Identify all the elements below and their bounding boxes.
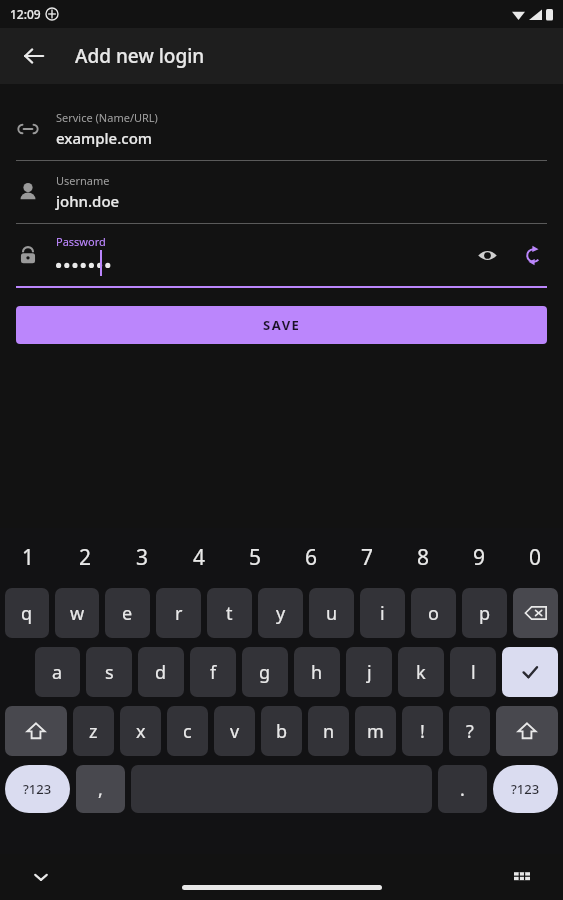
button[interactable]: ?123 <box>493 765 558 813</box>
button[interactable]: u <box>309 588 354 638</box>
button[interactable]: j <box>346 647 392 697</box>
staticText: l <box>471 660 476 685</box>
staticText: Service (Name/URL) <box>56 110 158 125</box>
button[interactable]: v <box>214 706 255 756</box>
button[interactable]: i <box>360 588 405 638</box>
button[interactable]: Backspace <box>513 588 558 638</box>
button[interactable]: 1 <box>0 536 57 578</box>
button[interactable]: 6 <box>283 536 339 578</box>
staticText: i <box>380 601 385 626</box>
button[interactable]: o <box>411 588 456 638</box>
button[interactable]: 9 <box>451 536 507 578</box>
button[interactable]: Switch keyboard <box>507 862 537 892</box>
staticText: 5 <box>249 543 262 572</box>
button[interactable]: q <box>5 588 49 638</box>
button[interactable]: Shift <box>5 706 67 756</box>
button[interactable]: ? <box>449 706 490 756</box>
staticText: Password <box>56 234 106 249</box>
staticText: Add new login <box>75 43 205 69</box>
staticText: 4 <box>193 543 206 572</box>
button[interactable]: ! <box>402 706 443 756</box>
staticText: u <box>326 601 338 626</box>
button[interactable]: r <box>156 588 201 638</box>
staticText: f <box>210 660 217 685</box>
button[interactable]: n <box>308 706 349 756</box>
staticText: 7 <box>361 543 374 572</box>
button[interactable]: Enter <box>502 647 558 697</box>
staticText: a <box>52 660 63 685</box>
staticText: 1 <box>22 543 35 572</box>
button[interactable]: k <box>398 647 444 697</box>
staticText: j <box>367 660 372 685</box>
staticText: o <box>428 601 439 626</box>
staticText: Username <box>56 173 110 188</box>
staticText: t <box>226 601 233 626</box>
button[interactable]: h <box>294 647 340 697</box>
staticText: 12:09 <box>10 6 41 22</box>
button[interactable]: w <box>55 588 99 638</box>
button[interactable]: Username <box>0 161 563 224</box>
button[interactable]: d <box>138 647 184 697</box>
staticText: 3 <box>136 543 149 572</box>
button[interactable]: , <box>76 765 125 813</box>
staticText: . <box>460 777 465 802</box>
button[interactable]: 2 <box>57 536 114 578</box>
staticText: q <box>21 601 33 626</box>
button[interactable]: Generate password <box>511 233 555 277</box>
button[interactable]: l <box>450 647 496 697</box>
button[interactable]: z <box>73 706 114 756</box>
button[interactable]: 4 <box>171 536 227 578</box>
staticText: 9 <box>473 543 486 572</box>
button[interactable]: t <box>207 588 252 638</box>
staticText: ?123 <box>23 780 52 798</box>
button[interactable]: m <box>355 706 396 756</box>
button[interactable]: Back <box>12 34 56 78</box>
staticText: v <box>230 719 240 744</box>
button[interactable]: Show password <box>465 233 509 277</box>
staticText: ?123 <box>511 780 540 798</box>
staticText: , <box>98 777 103 802</box>
button[interactable]: SAVE <box>16 306 547 344</box>
staticText: k <box>416 660 426 685</box>
staticText: 8 <box>417 543 430 572</box>
staticText: n <box>323 719 335 744</box>
button[interactable]: 3 <box>114 536 171 578</box>
staticText: r <box>175 601 183 626</box>
button[interactable]: Shift <box>496 706 558 756</box>
staticText: e <box>122 601 133 626</box>
button[interactable]: Password <box>0 224 563 286</box>
staticText: w <box>70 601 85 626</box>
staticText: example.com <box>56 128 153 148</box>
button[interactable]: 0 <box>507 536 563 578</box>
staticText: 6 <box>305 543 318 572</box>
button[interactable]: ?123 <box>5 765 70 813</box>
staticText: 2 <box>79 543 92 572</box>
staticText: john.doe <box>56 191 120 211</box>
staticText: x <box>136 719 146 744</box>
button[interactable]: e <box>105 588 150 638</box>
button[interactable]: . <box>438 765 487 813</box>
staticText: b <box>276 719 288 744</box>
button[interactable]: s <box>86 647 132 697</box>
button[interactable]: c <box>167 706 208 756</box>
button[interactable]: b <box>261 706 302 756</box>
button[interactable]: 5 <box>227 536 283 578</box>
button[interactable]: y <box>258 588 303 638</box>
staticText: ! <box>420 719 425 744</box>
button[interactable]: 8 <box>395 536 451 578</box>
staticText: g <box>259 660 271 685</box>
button[interactable]: Service (Name/URL) <box>0 98 563 161</box>
button[interactable]: g <box>242 647 288 697</box>
button[interactable]: p <box>462 588 507 638</box>
button[interactable]: 7 <box>339 536 395 578</box>
button[interactable]: f <box>190 647 236 697</box>
button[interactable]: Hide keyboard <box>26 862 56 892</box>
staticText: m <box>367 719 384 744</box>
button[interactable]: x <box>120 706 161 756</box>
button[interactable]: a <box>35 647 80 697</box>
staticText: d <box>155 660 167 685</box>
staticText: ? <box>466 719 474 744</box>
staticText: c <box>183 719 192 744</box>
staticText: y <box>276 601 286 626</box>
